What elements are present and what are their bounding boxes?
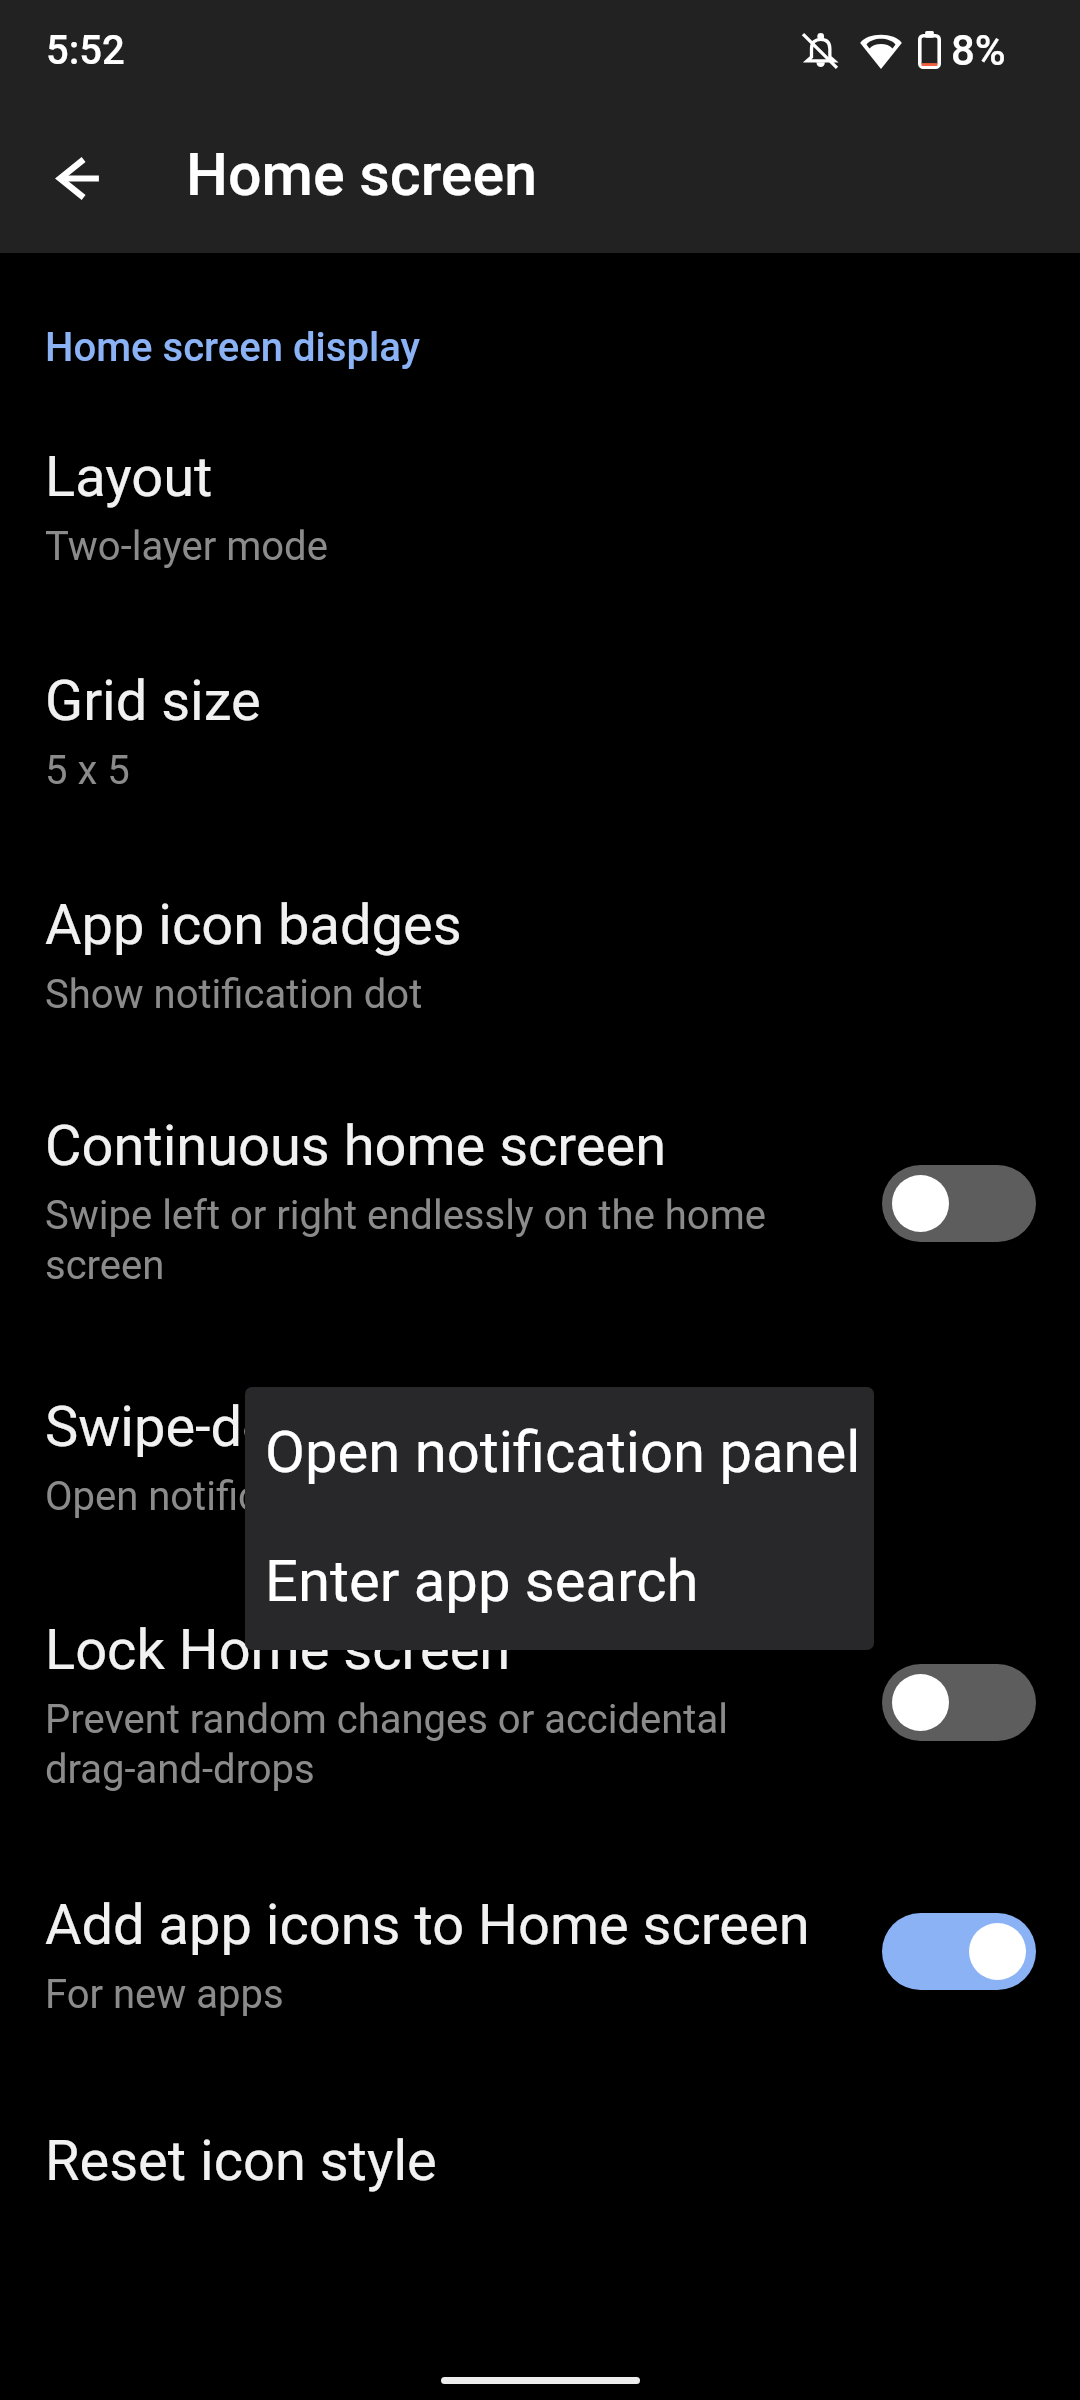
staticText: Swipe-down action [45,1397,516,1459]
staticText: Open notification panel [265,1421,861,1485]
staticText: Show notification dot [45,968,1045,1018]
staticText: For new apps [45,1968,1045,2018]
button[interactable]: Switch off [882,1664,1036,1741]
button[interactable]: Switch off [882,1165,1036,1242]
staticText: Grid size [45,671,261,733]
staticText: Layout [45,447,213,509]
button[interactable]: Swipe-down action [0,1397,1080,1587]
staticText: Add app icons to Home screen [45,1895,810,1957]
staticText: 5:52 [46,25,125,74]
staticText: Enter app search [265,1550,699,1614]
button[interactable]: Enter app search [245,1519,874,1650]
staticText: 5 x 5 [45,744,1045,794]
staticText: Home screen display [45,322,420,371]
staticText: Prevent random changes or accidental dra… [45,1693,805,1793]
staticText: Continuous home screen [45,1116,667,1178]
staticText: Swipe left or right endlessly on the hom… [45,1189,805,1289]
button[interactable]: Add app icons to Home screen [0,1895,1080,2085]
staticText: Lock Home screen [45,1620,511,1682]
button[interactable]: Layout [0,447,1080,637]
button[interactable]: Reset icon style [0,2131,1080,2271]
staticText: Reset icon style [45,2131,437,2193]
button[interactable]: Back [34,133,124,223]
staticText: Home screen [186,138,537,210]
staticText: App icon badges [45,895,462,957]
staticText: Two-layer mode [45,520,1045,570]
button[interactable]: Open notification panel [245,1387,874,1519]
staticText: Open notification panel [45,1470,1045,1520]
button[interactable]: Continuous home screen [0,1116,1080,1354]
staticText: 8% [951,24,1006,75]
button[interactable]: Grid size [0,671,1080,861]
button[interactable]: Lock Home screen [0,1620,1080,1858]
button[interactable]: App icon badges [0,895,1080,1085]
button[interactable]: Switch on [882,1913,1036,1990]
